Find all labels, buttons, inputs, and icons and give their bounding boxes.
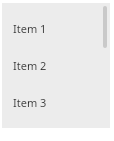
- other: Scroll position: [103, 6, 107, 48]
- button[interactable]: Item 3: [2, 95, 110, 110]
- staticText: Item 2: [13, 58, 47, 73]
- staticText: Item 1: [13, 21, 47, 36]
- button[interactable]: Item 2: [2, 58, 110, 73]
- button[interactable]: Item 1: [2, 21, 110, 36]
- staticText: Item 3: [13, 95, 47, 110]
